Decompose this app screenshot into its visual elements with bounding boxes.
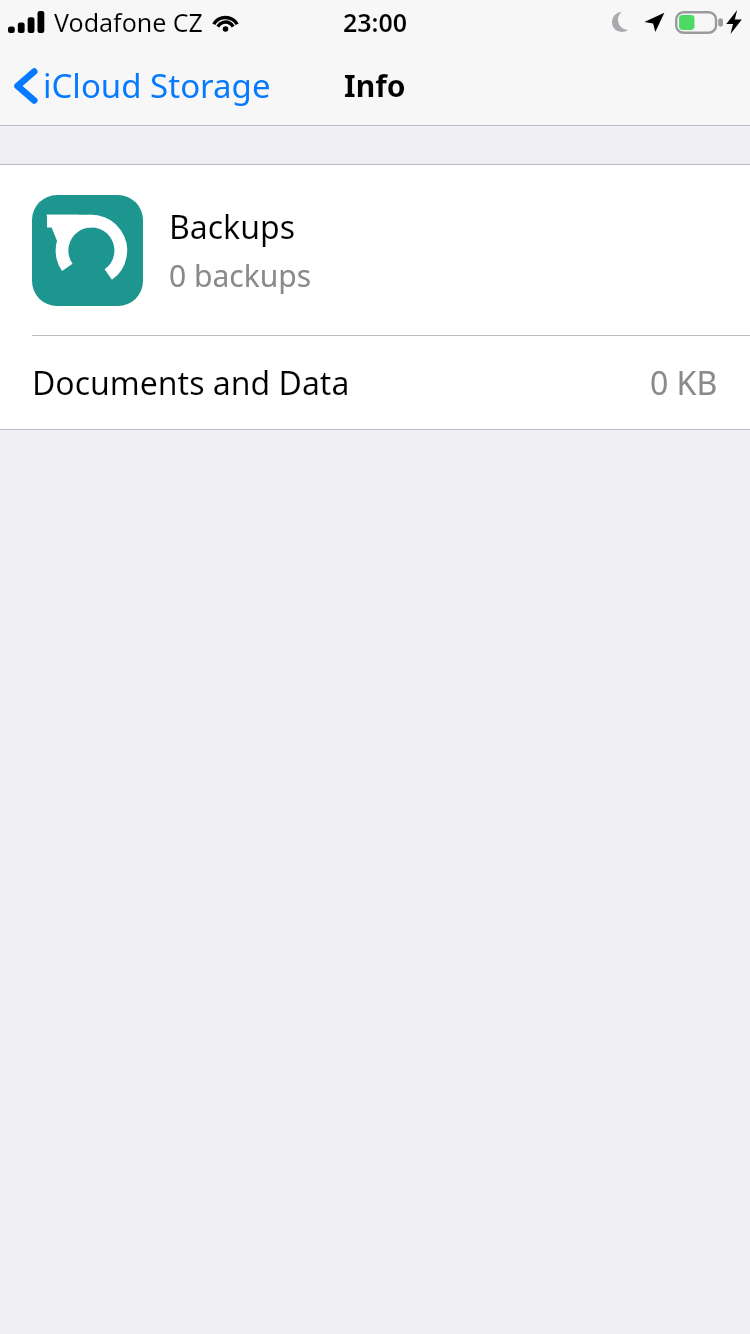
staticText: Info [344, 65, 406, 106]
staticText: Documents and Data [32, 361, 350, 405]
staticText: iCloud Storage [43, 63, 271, 108]
staticText: 0 backups [169, 255, 312, 296]
staticText: 23:00 [343, 5, 408, 39]
staticText: 0 KB [650, 361, 718, 405]
button[interactable]: Documents and Data [0, 336, 750, 429]
staticText: Backups [169, 205, 295, 249]
other: Backups [32, 195, 143, 306]
button[interactable]: Backups [0, 165, 750, 335]
button[interactable]: iCloud Storage [0, 55, 283, 116]
staticText: Vodafone CZ [54, 5, 203, 39]
